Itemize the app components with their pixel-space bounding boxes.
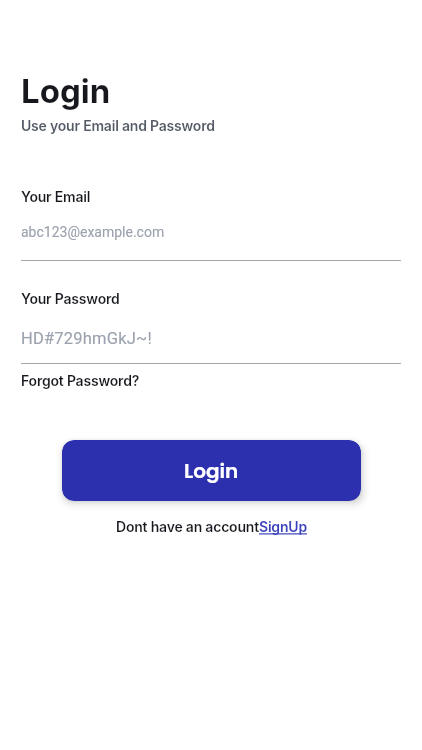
button[interactable]: HD#729hmGkJ~! (21, 324, 401, 365)
staticText: abc123@example.com (21, 224, 165, 240)
staticText: Your Password (21, 290, 120, 307)
button[interactable]: Login (62, 440, 361, 501)
staticText: HD#729hmGkJ~! (21, 329, 152, 348)
staticText: Use your Email and Password (21, 117, 215, 134)
button[interactable]: Forgot Password? (21, 372, 140, 389)
staticText: Dont have an account (116, 518, 259, 535)
staticText: Your Email (21, 188, 91, 205)
staticText: Login (184, 457, 239, 485)
staticText: SignUp (259, 518, 307, 535)
button[interactable]: abc123@example.com (21, 220, 401, 262)
staticText: Login (21, 71, 111, 111)
staticText: Forgot Password? (21, 372, 140, 389)
button[interactable]: SignUp (259, 518, 307, 535)
